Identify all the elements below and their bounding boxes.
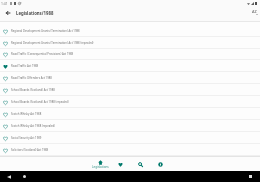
button[interactable]: Regional Development Grants (Termination… <box>0 25 260 37</box>
staticText: School Boards (Scotland) Act 1988 (repea… <box>11 100 69 104</box>
button[interactable]: Solicitors (Scotland) Act 1988 <box>0 144 260 156</box>
staticText: 1:41 <box>1 1 8 6</box>
staticText: Legislations <box>92 165 109 169</box>
button[interactable]: Scotch Whisky Act 1988 <box>0 108 260 120</box>
button[interactable]: Search <box>130 157 150 171</box>
button[interactable]: About <box>150 157 170 171</box>
staticText: AZ <box>252 9 257 14</box>
button[interactable]: Road Traffic Offenders Act 1988 <box>0 72 260 84</box>
button[interactable]: Scotch Whisky Act 1988 (repealed) <box>0 120 260 132</box>
button[interactable]: School Boards (Scotland) Act 1988 <box>0 84 260 96</box>
button[interactable]: Sort A to Z <box>250 8 259 17</box>
staticText: Legislations/1988 <box>16 10 54 16</box>
staticText: Regional Development Grants (Termination… <box>11 29 80 33</box>
staticText: School Boards (Scotland) Act 1988 <box>11 88 55 92</box>
button[interactable]: Back <box>3 8 12 17</box>
staticText: Solicitors (Scotland) Act 1988 <box>11 148 49 152</box>
button[interactable]: Road Traffic (Consequential Provisions) … <box>0 48 260 60</box>
staticText: Social Security Act 1989 <box>11 136 42 140</box>
button[interactable]: Regional Development Grants (Termination… <box>0 37 260 49</box>
staticText: Regional Development Grants (Termination… <box>11 41 94 45</box>
button[interactable]: Road Traffic Act 1988 <box>0 60 260 72</box>
staticText: Road Traffic Offenders Act 1988 <box>11 76 52 80</box>
staticText: Scotch Whisky Act 1988 (repealed) <box>11 124 56 128</box>
button[interactable]: Legislations <box>90 157 110 171</box>
staticText: Scotch Whisky Act 1988 <box>11 112 42 116</box>
staticText: Road Traffic (Consequential Provisions) … <box>11 52 74 56</box>
button[interactable]: Social Security Act 1989 <box>0 132 260 144</box>
staticText: Road Traffic Act 1988 <box>11 64 39 68</box>
button[interactable]: Favourites <box>110 157 130 171</box>
button[interactable]: School Boards (Scotland) Act 1988 (repea… <box>0 96 260 108</box>
